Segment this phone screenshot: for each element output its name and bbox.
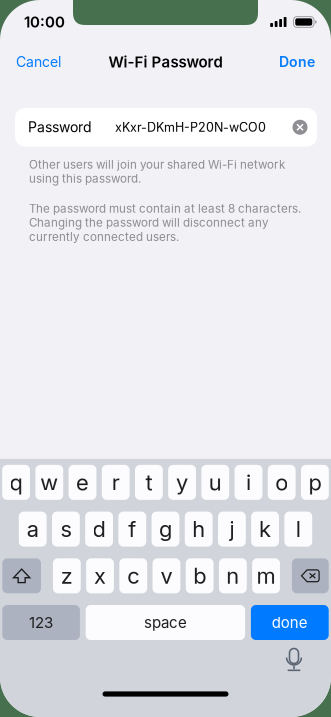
button[interactable]: w xyxy=(35,465,63,500)
button[interactable]: 123 xyxy=(2,605,80,640)
staticText: Wi-Fi Password xyxy=(108,53,222,71)
button[interactable]: a xyxy=(19,512,47,547)
staticText: Done xyxy=(279,53,315,70)
button[interactable]: g xyxy=(152,512,179,547)
staticText: y xyxy=(176,469,188,496)
button[interactable]: y xyxy=(168,465,196,500)
button[interactable]: i xyxy=(235,465,262,500)
button[interactable]: space xyxy=(86,605,245,640)
staticText: q xyxy=(10,469,23,496)
staticText: o xyxy=(275,469,288,496)
button[interactable]: b xyxy=(186,558,214,593)
staticText: v xyxy=(160,562,172,589)
button[interactable]: k xyxy=(251,512,279,547)
staticText: i xyxy=(246,469,251,496)
staticText: Cancel xyxy=(16,53,61,70)
staticText: The password must contain at least 8 cha… xyxy=(29,202,301,244)
staticText: s xyxy=(60,516,71,542)
staticText: p xyxy=(308,469,321,496)
button[interactable]: done xyxy=(251,605,329,640)
staticText: 123 xyxy=(29,613,53,631)
staticText: e xyxy=(76,469,89,496)
button[interactable]: Cancel xyxy=(14,46,63,77)
button[interactable]: Delete xyxy=(292,558,329,593)
button[interactable]: t xyxy=(135,465,163,500)
button[interactable]: Clear text xyxy=(289,116,311,138)
staticText: xKxr-DKmH-P20N-wCO0 xyxy=(115,120,266,135)
button[interactable]: d xyxy=(85,512,113,547)
staticText: j xyxy=(229,516,234,542)
staticText: done xyxy=(272,613,308,631)
button[interactable]: l xyxy=(284,512,312,547)
button[interactable]: q xyxy=(2,465,30,500)
staticText: a xyxy=(27,516,39,542)
button[interactable]: Dictate xyxy=(281,643,307,669)
button[interactable]: o xyxy=(268,465,296,500)
staticText: Other users will join your shared Wi-Fi … xyxy=(29,157,285,186)
staticText: t xyxy=(145,469,152,496)
staticText: g xyxy=(159,516,172,542)
button[interactable]: p xyxy=(301,465,329,500)
staticText: m xyxy=(256,562,275,589)
button[interactable]: v xyxy=(152,558,180,593)
staticText: d xyxy=(93,516,106,542)
button[interactable]: u xyxy=(201,465,229,500)
button[interactable]: j xyxy=(218,512,246,547)
button[interactable]: h xyxy=(185,512,213,547)
button[interactable]: e xyxy=(69,465,96,500)
button[interactable]: s xyxy=(52,512,80,547)
button[interactable]: n xyxy=(219,558,247,593)
staticText: w xyxy=(40,469,58,496)
staticText: c xyxy=(127,562,139,589)
staticText: b xyxy=(193,562,206,589)
staticText: k xyxy=(259,516,271,542)
staticText: n xyxy=(226,562,239,589)
button[interactable]: Done xyxy=(277,46,317,77)
button[interactable]: c xyxy=(119,558,147,593)
button[interactable]: x xyxy=(86,558,114,593)
button[interactable]: Shift xyxy=(2,558,41,593)
staticText: f xyxy=(128,516,136,542)
button[interactable]: r xyxy=(102,465,130,500)
staticText: Password xyxy=(28,119,92,136)
button[interactable]: m xyxy=(252,558,280,593)
staticText: space xyxy=(144,613,187,631)
button[interactable]: z xyxy=(53,558,81,593)
staticText: u xyxy=(209,469,222,496)
staticText: 10:00 xyxy=(24,13,65,31)
staticText: z xyxy=(61,562,73,589)
button[interactable]: f xyxy=(118,512,146,547)
staticText: r xyxy=(112,469,120,496)
staticText: l xyxy=(296,516,301,542)
staticText: x xyxy=(94,562,106,589)
staticText: h xyxy=(192,516,205,542)
